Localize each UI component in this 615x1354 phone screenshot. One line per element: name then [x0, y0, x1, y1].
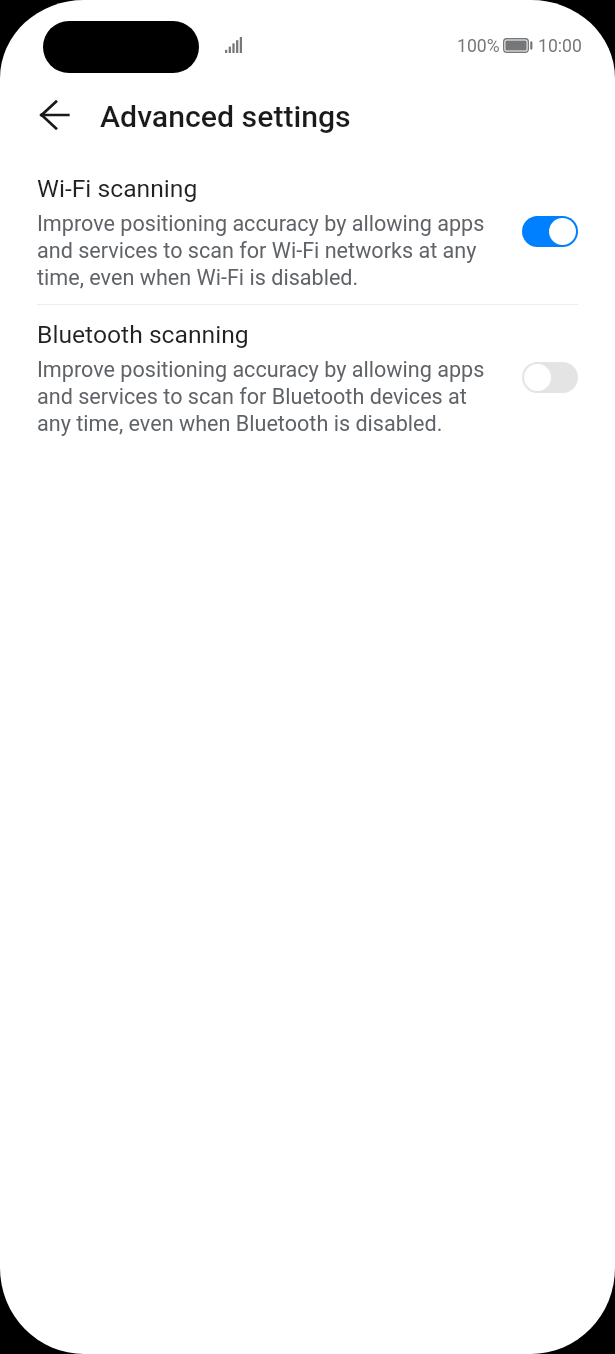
button[interactable]: Bluetooth scanning [0, 320, 615, 450]
button[interactable]: Wi-Fi scanning [522, 216, 578, 247]
staticText: Improve positioning accuracy by allowing… [37, 355, 485, 436]
staticText: Wi-Fi scanning [37, 174, 198, 203]
staticText: Improve positioning accuracy by allowing… [37, 209, 485, 290]
staticText: 100% [457, 36, 500, 57]
button[interactable]: Wi-Fi scanning [0, 174, 615, 304]
button[interactable]: Back [30, 91, 78, 139]
staticText: 10:00 [538, 36, 582, 57]
button[interactable]: Bluetooth scanning [522, 362, 578, 393]
staticText: Advanced settings [100, 99, 351, 134]
staticText: Bluetooth scanning [37, 320, 249, 349]
